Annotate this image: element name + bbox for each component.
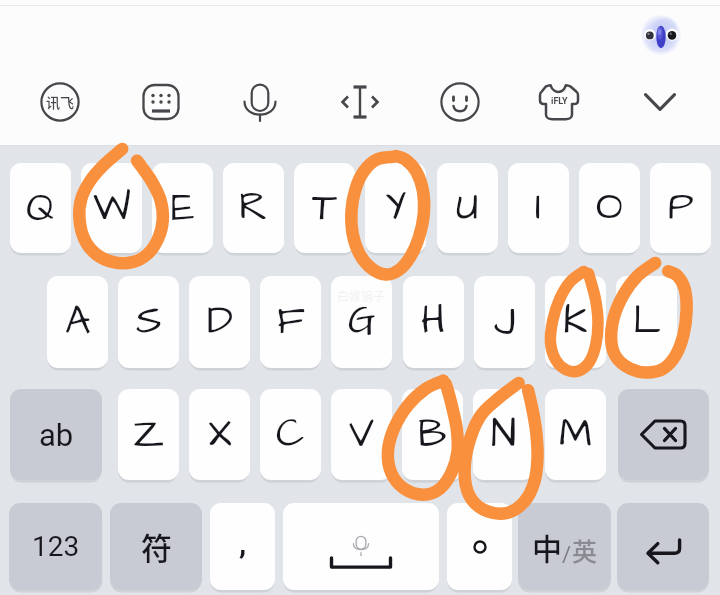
staticText: E [171,180,195,236]
button[interactable]: C [260,389,321,480]
staticText: V [349,407,375,463]
button[interactable]: iFlytek input method [30,72,90,132]
staticText: X [208,407,232,463]
staticText: T [312,180,337,236]
staticText: iFLY [551,96,568,107]
button[interactable]: T [294,163,355,253]
button[interactable]: H [403,276,464,368]
staticText: C [276,407,305,463]
button[interactable]: I [508,163,569,253]
staticText: A [65,294,91,350]
staticText: R [239,180,268,236]
staticText: K [563,294,588,350]
staticText: / [562,542,572,568]
button[interactable]: Comma [210,503,275,590]
button[interactable]: S [118,276,179,368]
button[interactable]: Collapse keyboard [630,72,690,132]
staticText: N [491,407,517,463]
staticText: O [596,180,623,236]
staticText: D [207,294,233,350]
button[interactable]: B [402,389,463,480]
button[interactable]: iFlytek assistant [639,13,683,57]
staticText: Z [133,407,165,463]
button[interactable]: Backspace [618,389,709,480]
button[interactable]: N [473,389,534,480]
button[interactable]: O [579,163,640,253]
staticText: 英 [572,532,598,568]
button[interactable]: D [189,276,250,368]
staticText: 讯飞 [46,92,74,112]
staticText: H [421,294,446,350]
button[interactable]: V [331,389,392,480]
button[interactable]: Period [447,503,512,590]
button[interactable]: F [260,276,321,368]
button[interactable]: Theme skin [529,72,589,132]
button[interactable]: Space [283,503,439,590]
staticText: Q [26,180,55,236]
button[interactable]: U [437,163,498,253]
button[interactable]: L [616,276,677,368]
staticText: , [239,526,247,561]
staticText: Y [385,180,407,236]
staticText: M [559,407,593,463]
staticText: B [418,407,447,463]
staticText: S [136,294,162,350]
button[interactable]: Switch to lowercase [10,389,102,480]
button[interactable]: G [331,276,392,368]
staticText: 123 [32,530,80,563]
staticText: W [93,180,131,236]
button[interactable]: Symbols [110,503,202,590]
button[interactable]: X [189,389,250,480]
button[interactable]: K [545,276,606,368]
staticText: J [494,294,516,350]
button[interactable]: Enter [617,503,709,590]
button[interactable]: Emoji [430,72,490,132]
staticText: U [456,180,479,236]
button[interactable]: Z [118,389,179,480]
button[interactable]: Numbers [9,503,102,590]
button[interactable]: M [545,389,606,480]
staticText: 符 [141,524,172,569]
button[interactable]: Q [10,163,71,253]
button[interactable]: R [223,163,284,253]
button[interactable]: E [152,163,213,253]
staticText: ab [39,417,74,453]
button[interactable]: A [47,276,108,368]
staticText: P [668,180,694,236]
button[interactable]: Voice input [230,72,290,132]
staticText: 白嫁骗子 [337,287,386,304]
staticText: 中 [532,525,562,568]
staticText: I [535,180,542,236]
button[interactable]: Chinese English toggle [518,503,611,590]
staticText: L [633,294,661,350]
button[interactable]: P [650,163,711,253]
staticText: G [348,294,376,350]
button[interactable]: Y [365,163,426,253]
button[interactable]: W [81,163,142,253]
button[interactable]: Move cursor [330,72,390,132]
button[interactable]: J [474,276,535,368]
button[interactable]: Keyboard layout [131,72,191,132]
staticText: F [277,294,305,350]
